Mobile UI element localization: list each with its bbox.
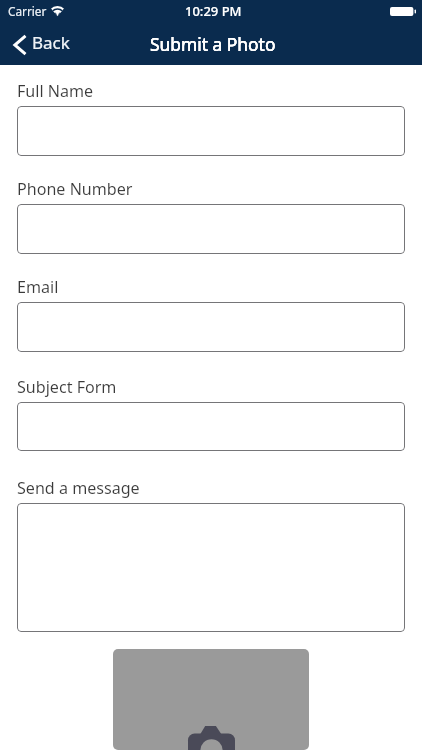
staticText: Email: [17, 276, 59, 298]
staticText: 10:29 PM: [185, 2, 242, 20]
button[interactable]: [17, 503, 405, 632]
button[interactable]: Back: [0, 28, 83, 61]
button[interactable]: [17, 402, 405, 451]
staticText: Back: [32, 31, 70, 54]
button[interactable]: [17, 106, 405, 156]
button[interactable]: Add a photo: [113, 649, 309, 750]
button[interactable]: [17, 302, 405, 352]
staticText: Full Name: [17, 80, 94, 102]
button[interactable]: [17, 204, 405, 254]
staticText: Send a message: [17, 477, 140, 499]
staticText: Submit a Photo: [150, 32, 276, 56]
staticText: Phone Number: [17, 178, 133, 200]
staticText: Carrier: [8, 3, 47, 19]
staticText: Submit a Photo: [150, 32, 276, 56]
staticText: Subject Form: [17, 376, 117, 398]
